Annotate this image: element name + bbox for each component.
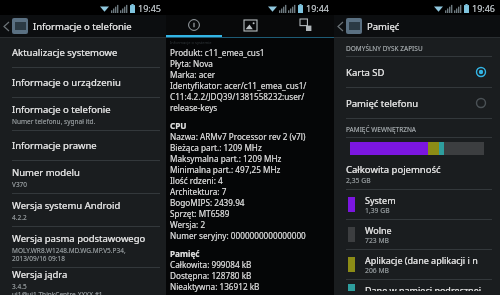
staticText: Pamięć telefonu [346, 97, 476, 110]
staticText: C11:4.2.2/JDQ39/1381558232:user/ [170, 91, 305, 102]
button[interactable]: Wersja pasma podstawowego [0, 227, 166, 268]
button[interactable]: Pamięć telefonu [334, 88, 500, 119]
staticText: 206 MB [365, 266, 390, 275]
staticText: Numer telefonu, sygnał itd. [12, 117, 96, 126]
staticText: Wersja jądra [12, 268, 68, 281]
staticText: 2,35 GB [346, 176, 371, 185]
staticText: Aktualizacje systemowe [12, 46, 118, 59]
staticText: Architektura: 7 [170, 186, 227, 197]
staticText: Pamięć [170, 248, 200, 259]
button[interactable]: Informacje o telefonie [0, 98, 166, 131]
staticText: Bieżąca part.: 1209 MHz [170, 142, 262, 153]
staticText: Marka: acer [170, 69, 216, 80]
staticText: Wersja systemu Android [12, 199, 121, 212]
staticText: CPU [170, 120, 187, 131]
staticText: Pamięć [367, 20, 400, 33]
staticText: Sprzęt: MT6589 [170, 208, 230, 219]
staticText: Karta SD [346, 66, 476, 79]
staticText: MOLY.WR8.W1248.MD.WG.MP.V5.P34, 2013/09/… [12, 246, 126, 263]
staticText: PAMIĘĆ WEWNĘTRZNA [346, 125, 416, 134]
button[interactable]: Całkowita pojemność [334, 163, 500, 190]
staticText: Informacje o telefonie [12, 103, 111, 116]
staticText: Produkt: c11_emea_cus1 [170, 47, 265, 58]
staticText: 19:45 [138, 2, 162, 14]
button[interactable]: Wstecz [0, 15, 166, 37]
button[interactable]: Wersja jądra [0, 268, 166, 295]
button[interactable]: System [334, 190, 500, 220]
staticText: Wersja: 2 [170, 219, 206, 230]
button[interactable]: Dane w pamięci podręcznej [334, 280, 500, 295]
other: Wstecz [338, 22, 343, 31]
staticText: Numer modelu [12, 166, 80, 179]
staticText: System [365, 194, 396, 206]
staticText: Ilość rdzeni: 4 [170, 175, 223, 186]
staticText: Informacje o urządzeniu [12, 76, 121, 89]
staticText: BogoMIPS: 2439.94 [170, 197, 245, 208]
staticText: 723 MB [365, 236, 390, 245]
button[interactable]: Informacje o urządzeniu [0, 68, 166, 98]
staticText: Maksymalna part.: 1209 MHz [170, 153, 282, 164]
button[interactable]: Karta [222, 15, 278, 37]
button[interactable]: Aplikacje (dane aplikacji i n [334, 250, 500, 280]
button[interactable]: Karta SD [334, 57, 500, 88]
staticText: Informacje o systemie [170, 40, 212, 45]
staticText: Wersja pasma podstawowego [12, 232, 146, 245]
staticText: release-keys [170, 102, 218, 113]
staticText: Identyfikator: acer/c11_emea_cus1/ [170, 80, 307, 91]
staticText: Informacje o telefonie [33, 20, 132, 33]
other: Wstecz [4, 22, 9, 31]
button[interactable]: Wersja systemu Android [0, 194, 166, 227]
staticText: 1,39 GB [365, 206, 390, 215]
button[interactable]: Wolne [334, 220, 500, 250]
staticText: Aplikacje (dane aplikacji i n [365, 254, 478, 266]
button[interactable]: Numer modelu [0, 161, 166, 194]
staticText: Dane w pamięci podręcznej [365, 284, 482, 291]
button[interactable]: Informacje prawne [0, 131, 166, 161]
button[interactable]: Wstecz [334, 15, 500, 37]
staticText: 19:44 [306, 2, 330, 14]
staticText: Całkowita: 999084 kB [170, 259, 252, 270]
button[interactable]: Aktualizacje systemowe [0, 38, 166, 68]
staticText: Minimalna part.: 497,25 MHz [170, 164, 281, 175]
staticText: Wolne [365, 224, 392, 236]
staticText: V370 [12, 180, 28, 189]
staticText: Płyta: Nova [170, 58, 213, 69]
staticText: 4.2.2 [12, 213, 27, 222]
staticText: 19:46 [472, 2, 496, 14]
staticText: DOMYŚLNY DYSK ZAPISU [346, 44, 423, 53]
button[interactable]: Karta [166, 15, 222, 37]
staticText: Dostępna: 128780 kB [170, 270, 252, 281]
staticText: Całkowita pojemność [346, 163, 441, 176]
staticText: Nazwa: ARMv7 Processor rev 2 (v7l) [170, 131, 306, 142]
staticText: Nieaktywna: 136912 kB [170, 281, 260, 292]
staticText: 3.4.5 ui1@ui1-ThinkCentre-XXXX #1 Sat Oc… [12, 282, 103, 295]
button[interactable]: Karta [278, 15, 334, 37]
staticText: Numer seryjny: 0000000000000000 [170, 230, 306, 241]
staticText: Informacje prawne [12, 139, 97, 152]
